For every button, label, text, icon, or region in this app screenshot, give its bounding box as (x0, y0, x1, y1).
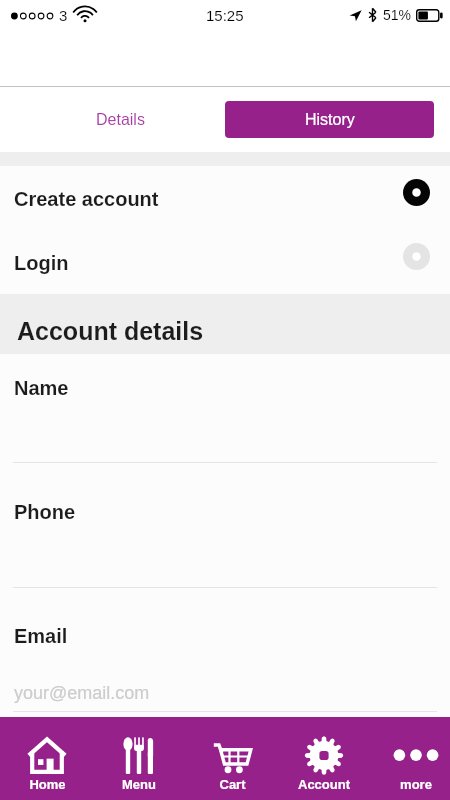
staticText: Email (14, 625, 68, 647)
staticText: Details (96, 111, 145, 129)
button[interactable]: Home (1, 717, 93, 800)
staticText: Create account (14, 188, 159, 210)
staticText: Home (29, 777, 66, 792)
staticText: History (305, 111, 355, 129)
staticText: your@email.com (14, 683, 150, 703)
staticText: more (400, 777, 432, 792)
staticText: Account (298, 777, 350, 792)
staticText: Account details (17, 317, 204, 345)
staticText: 51% (383, 7, 412, 23)
button[interactable]: more (370, 717, 450, 800)
staticText: Cart (219, 777, 246, 792)
staticText: 3 (59, 7, 68, 24)
staticText: Menu (122, 777, 156, 792)
staticText: 15:25 (206, 7, 244, 24)
button[interactable]: Login (0, 229, 450, 294)
staticText: Phone (14, 501, 76, 523)
button[interactable]: Menu (93, 717, 185, 800)
button[interactable]: History (225, 101, 434, 138)
button[interactable]: Cart (186, 717, 278, 800)
button[interactable]: Details (16, 101, 225, 138)
staticText: Login (14, 252, 69, 274)
button[interactable]: Account (278, 717, 370, 800)
staticText: Name (14, 377, 69, 399)
button[interactable]: Create account (0, 166, 450, 229)
